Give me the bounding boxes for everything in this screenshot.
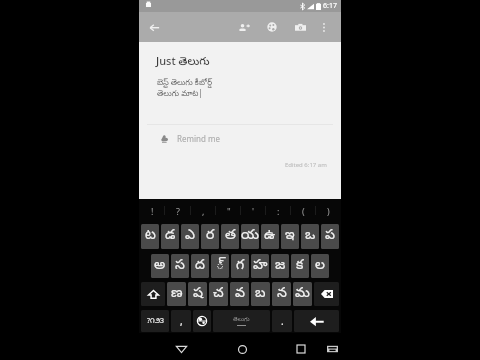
staticText: ఒ <box>305 227 316 246</box>
staticText: ఇ <box>285 227 295 246</box>
button[interactable]: ద <box>191 254 209 278</box>
staticText: ?౧౨౩ <box>147 316 164 327</box>
button[interactable]: ఉ <box>261 224 279 249</box>
staticText: వ <box>235 285 245 304</box>
staticText: య <box>241 227 259 246</box>
button[interactable]: వ <box>230 282 249 306</box>
button[interactable]: ష <box>188 282 207 306</box>
staticText: Just తెలుగు <box>156 53 210 70</box>
button[interactable]: ణ <box>167 282 186 306</box>
button[interactable]: Back <box>169 337 193 360</box>
button[interactable]: ర <box>201 224 219 249</box>
button[interactable]: ట <box>141 224 159 249</box>
staticText: 6:17 <box>323 1 337 11</box>
button[interactable]: Switch keyboard <box>322 339 342 359</box>
staticText: అ <box>154 257 166 276</box>
staticText: తెలుగు <box>233 316 250 324</box>
button[interactable]: ్ <box>211 254 229 278</box>
button[interactable]: : <box>266 199 291 222</box>
button[interactable]: చ <box>209 282 228 306</box>
button[interactable]: ఇ <box>281 224 299 249</box>
button[interactable]: Back <box>139 12 169 42</box>
button[interactable]: Change colour <box>258 13 286 41</box>
button[interactable]: Remind me <box>139 125 341 152</box>
button[interactable]: Symbols <box>141 310 169 332</box>
button[interactable]: ' <box>241 199 266 222</box>
button[interactable]: Recent apps <box>289 337 313 360</box>
button[interactable]: ఎ <box>181 224 199 249</box>
button[interactable]: Backspace <box>314 282 339 306</box>
staticText: స <box>175 257 185 276</box>
staticText: చ <box>213 285 224 304</box>
staticText: హ <box>253 257 268 276</box>
button[interactable]: గ <box>231 254 249 278</box>
staticText: ప <box>325 227 335 246</box>
staticText: ఉ <box>264 227 276 246</box>
button[interactable]: య <box>241 224 259 249</box>
button[interactable]: ల <box>311 254 329 278</box>
button[interactable]: స <box>171 254 189 278</box>
staticText: : <box>277 205 280 217</box>
button[interactable]: " <box>216 199 241 222</box>
staticText: ' <box>252 205 255 217</box>
button[interactable]: న <box>272 282 291 306</box>
button[interactable]: ) <box>316 199 341 222</box>
button[interactable]: జ <box>271 254 289 278</box>
staticText: ( <box>302 205 305 217</box>
button[interactable]: . <box>272 310 292 332</box>
button[interactable]: త <box>221 224 239 249</box>
staticText: బెస్ట్ తెలుగు కీబోర్డ్ తెలుగు మాట| <box>157 76 212 100</box>
staticText: క <box>296 257 304 276</box>
staticText: ? <box>176 205 180 217</box>
button[interactable]: ? <box>165 199 191 222</box>
button[interactable]: , <box>171 310 191 332</box>
staticText: ల <box>315 257 325 276</box>
button[interactable]: Enter <box>294 310 339 332</box>
button[interactable]: బ <box>251 282 270 306</box>
button[interactable]: క <box>291 254 309 278</box>
button[interactable]: అ <box>151 254 169 278</box>
button[interactable]: Home <box>230 337 254 360</box>
button[interactable]: ( <box>291 199 316 222</box>
button[interactable]: Add collaborator <box>230 13 258 41</box>
button[interactable]: Space <box>213 310 270 332</box>
button[interactable]: డ <box>161 224 179 249</box>
button[interactable]: Shift <box>141 282 165 306</box>
staticText: బ <box>255 285 266 304</box>
staticText: Remind me <box>177 133 220 144</box>
staticText: మ <box>295 285 310 304</box>
staticText: ్ <box>216 257 225 276</box>
staticText: . <box>281 314 284 328</box>
staticText: ష <box>193 285 203 304</box>
button[interactable]: ప <box>321 224 339 249</box>
staticText: " <box>227 205 231 217</box>
staticText: Edited 6:17 am <box>285 161 327 169</box>
staticText: ణ <box>171 285 183 304</box>
staticText: డ <box>165 227 176 246</box>
staticText: ర <box>206 227 215 246</box>
staticText: ఎ <box>185 227 195 246</box>
staticText: ) <box>327 205 330 217</box>
staticText: ద <box>195 257 205 276</box>
button[interactable]: , <box>191 199 216 222</box>
staticText: ట <box>145 227 156 246</box>
staticText: న <box>277 285 287 304</box>
button[interactable]: హ <box>251 254 269 278</box>
button[interactable]: Change language <box>193 310 211 332</box>
staticText: ! <box>151 205 154 217</box>
button[interactable]: More options <box>314 17 334 37</box>
staticText: , <box>202 205 205 217</box>
button[interactable]: Add image <box>286 13 314 41</box>
staticText: త <box>225 227 236 246</box>
button[interactable]: మ <box>293 282 312 306</box>
button[interactable]: ! <box>139 199 165 222</box>
staticText: గ <box>236 257 245 276</box>
button[interactable]: ఒ <box>301 224 319 249</box>
staticText: జ <box>275 257 286 276</box>
staticText: , <box>180 314 183 328</box>
